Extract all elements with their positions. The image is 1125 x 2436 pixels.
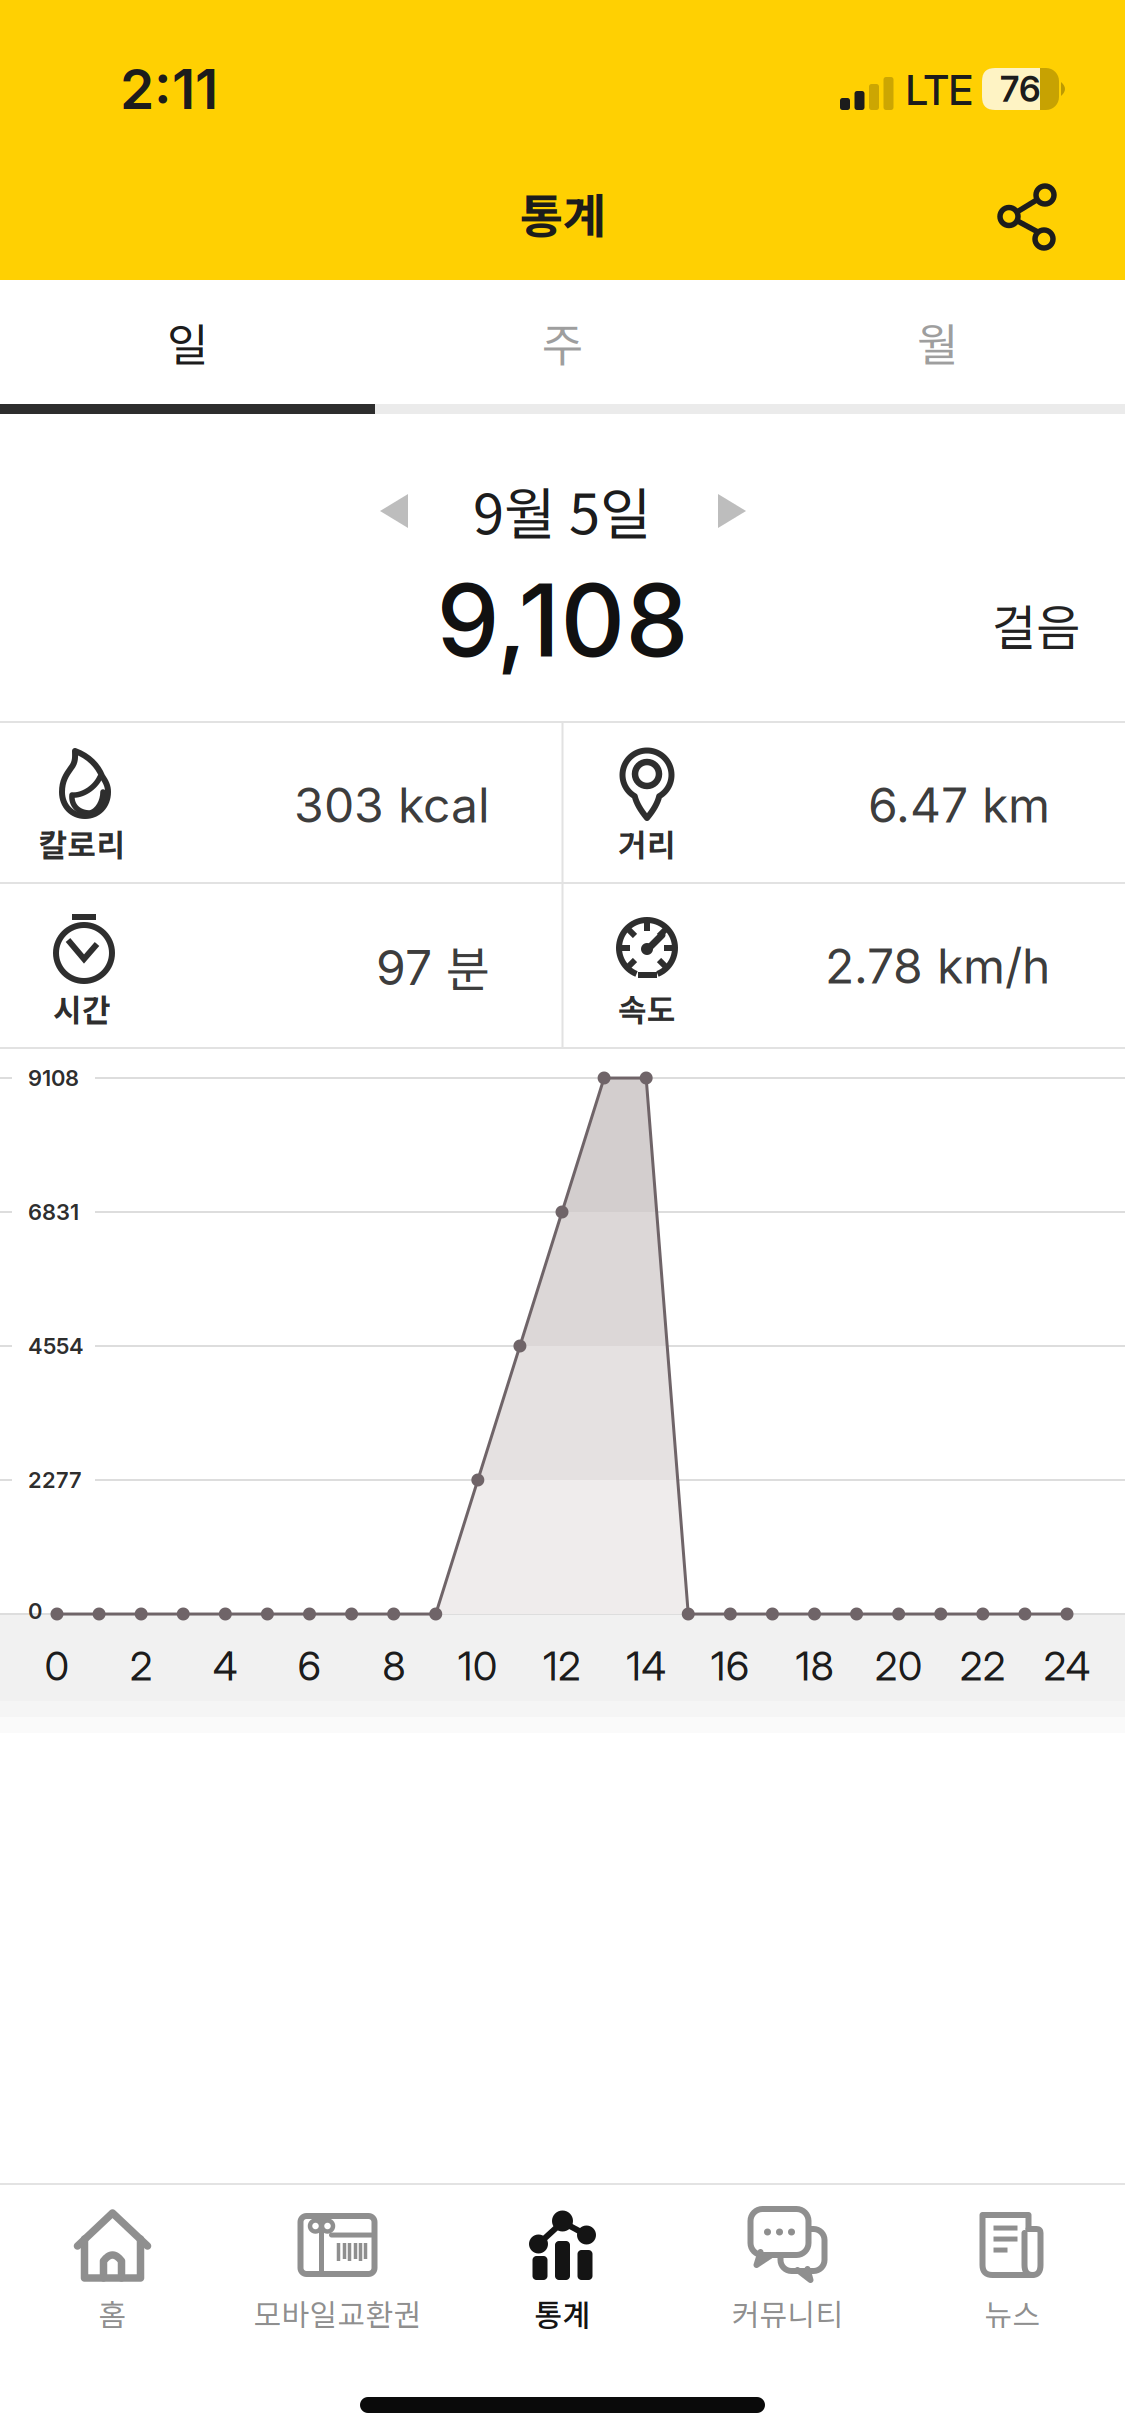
staticText: 2 <box>130 1642 153 1690</box>
button[interactable]: 일 <box>0 280 375 404</box>
staticText: 2:11 <box>120 56 218 122</box>
staticText: 홈 <box>98 2291 126 2335</box>
staticText: LTE <box>905 65 972 115</box>
staticText: 속도 <box>618 986 676 1030</box>
staticText: 24 <box>1043 1642 1090 1690</box>
staticText: 76 <box>1000 68 1041 110</box>
button[interactable]: 통계 <box>450 2185 675 2371</box>
staticText: 18 <box>795 1642 833 1690</box>
staticText: 9월 5일 <box>473 469 652 551</box>
staticText: 일 <box>167 309 208 375</box>
staticText: 통계 <box>519 179 605 247</box>
staticText: 16 <box>711 1642 750 1690</box>
staticText: 뉴스 <box>984 2291 1040 2335</box>
button[interactable]: 모바일교환권 <box>225 2185 450 2371</box>
staticText: 12 <box>543 1642 581 1690</box>
staticText: 2277 <box>28 1467 82 1493</box>
button[interactable]: 뉴스 <box>900 2185 1125 2371</box>
staticText: 0 <box>44 1642 69 1690</box>
staticText: 97 분 <box>376 931 490 1001</box>
staticText: 걸음 <box>992 589 1080 659</box>
staticText: 9108 <box>28 1065 79 1091</box>
staticText: 9,108 <box>436 559 688 680</box>
staticText: 303 kcal <box>294 776 490 834</box>
staticText: 0 <box>28 1598 42 1624</box>
button[interactable]: 월 <box>750 280 1125 404</box>
staticText: 칼로리 <box>38 821 125 865</box>
button[interactable]: Next day <box>703 483 759 539</box>
button[interactable]: 주 <box>375 280 750 404</box>
staticText: 모바일교환권 <box>253 2291 421 2335</box>
staticText: 4554 <box>28 1333 84 1359</box>
button[interactable]: 커뮤니티 <box>675 2185 900 2371</box>
staticText: 거리 <box>618 821 676 865</box>
staticText: 6831 <box>28 1199 79 1225</box>
staticText: 10 <box>458 1642 498 1690</box>
staticText: 14 <box>626 1642 666 1690</box>
staticText: 커뮤니티 <box>731 2291 843 2335</box>
button[interactable]: Share <box>994 173 1064 243</box>
staticText: 4 <box>213 1642 238 1690</box>
staticText: 2.78 km/h <box>825 937 1050 995</box>
staticText: 8 <box>382 1642 405 1690</box>
button[interactable]: 홈 <box>0 2185 225 2371</box>
staticText: 6.47 km <box>868 776 1050 834</box>
staticText: 통계 <box>534 2291 590 2335</box>
staticText: 주 <box>542 309 583 375</box>
staticText: 시간 <box>53 986 111 1030</box>
staticText: 6 <box>297 1642 321 1690</box>
staticText: 20 <box>875 1642 923 1690</box>
staticText: 22 <box>960 1642 1006 1690</box>
staticText: 월 <box>917 309 958 375</box>
button[interactable]: Previous day <box>367 483 423 539</box>
